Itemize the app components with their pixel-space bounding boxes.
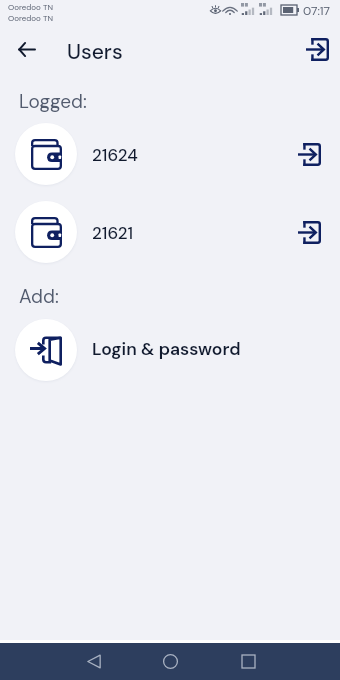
button[interactable]: 21624	[0, 123, 340, 185]
staticText: Add:	[19, 284, 59, 309]
staticText: Login & password	[92, 338, 241, 361]
button[interactable]: 21621	[0, 201, 340, 263]
staticText: Logged:	[19, 89, 87, 114]
button[interactable]: Back	[4, 27, 48, 71]
button[interactable]: Home	[148, 643, 192, 680]
staticText: Users	[67, 38, 123, 65]
staticText: Ooredoo TN	[8, 13, 53, 23]
staticText: Ooredoo TN	[8, 2, 53, 12]
staticText: 07:17	[303, 3, 331, 19]
staticText: 21624	[92, 144, 138, 166]
button[interactable]: Sign in as 21621	[288, 211, 330, 253]
button[interactable]: Back	[72, 643, 116, 680]
staticText: 21621	[92, 222, 134, 244]
button[interactable]: Login & password	[0, 319, 340, 381]
button[interactable]: Sign in as 21624	[288, 133, 330, 175]
button[interactable]: Recent apps	[226, 643, 270, 680]
button[interactable]: Log out	[295, 27, 339, 71]
